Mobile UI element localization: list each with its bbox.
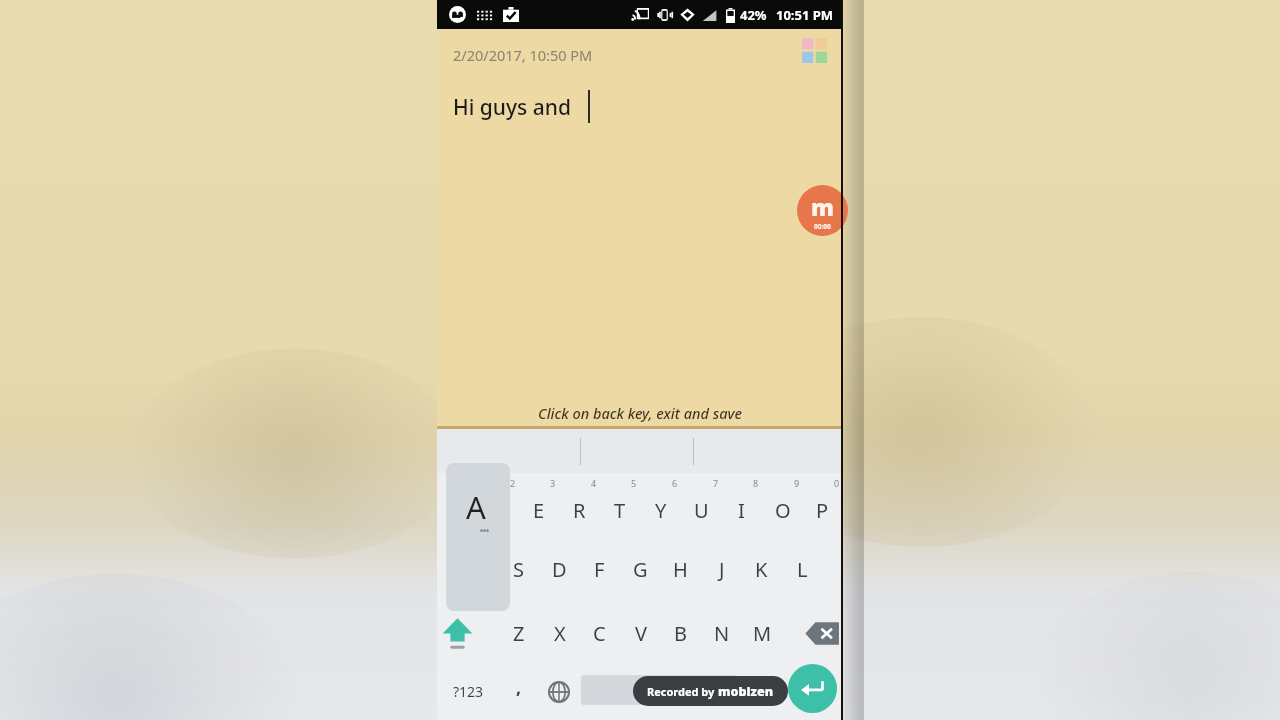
- staticText: A: [466, 486, 486, 528]
- staticText: I: [738, 497, 745, 524]
- staticText: ?123: [453, 682, 484, 701]
- button[interactable]: 7: [681, 473, 722, 537]
- button[interactable]: B: [660, 601, 701, 665]
- staticText: V: [635, 620, 647, 647]
- button[interactable]: 9: [762, 473, 803, 537]
- staticText: mobizen: [718, 683, 774, 700]
- button[interactable]: C: [579, 601, 620, 665]
- staticText: 5: [631, 477, 637, 489]
- button[interactable]: J: [701, 537, 742, 601]
- staticText: 00:00: [814, 222, 831, 231]
- staticText: L: [797, 556, 808, 583]
- staticText: 7: [713, 477, 719, 489]
- button[interactable]: D: [539, 537, 580, 601]
- button[interactable]: K: [741, 537, 782, 601]
- staticText: F: [594, 556, 605, 583]
- button[interactable]: V: [620, 601, 661, 665]
- button[interactable]: L: [782, 537, 823, 601]
- button[interactable]: ?123: [437, 665, 499, 718]
- staticText: J: [719, 556, 725, 583]
- button[interactable]: F: [579, 537, 620, 601]
- staticText: X: [554, 620, 566, 647]
- button[interactable]: Mobizen recorder: [797, 185, 848, 236]
- staticText: 4: [591, 477, 597, 489]
- staticText: 2: [510, 477, 516, 489]
- staticText: C: [593, 620, 606, 647]
- button[interactable]: 2: [478, 473, 519, 537]
- staticText: Z: [513, 620, 525, 647]
- button[interactable]: Z: [498, 601, 539, 665]
- button[interactable]: Space: [581, 675, 737, 705]
- button[interactable]: Shift: [437, 601, 478, 665]
- button[interactable]: N: [701, 601, 742, 665]
- staticText: Hi guys and: [453, 93, 571, 122]
- button[interactable]: Enter: [788, 664, 837, 713]
- staticText: 42%: [740, 6, 767, 24]
- staticText: S: [513, 556, 524, 583]
- staticText: M: [753, 620, 772, 647]
- button[interactable]: Note colour: [797, 33, 831, 67]
- staticText: T: [614, 497, 626, 524]
- staticText: K: [755, 556, 768, 583]
- staticText: O: [775, 497, 791, 524]
- staticText: •••: [480, 525, 490, 536]
- staticText: 8: [753, 477, 759, 489]
- staticText: Click on back key, exit and save: [538, 403, 742, 423]
- staticText: B: [674, 620, 687, 647]
- button[interactable]: H: [660, 537, 701, 601]
- staticText: H: [673, 556, 688, 583]
- staticText: 3: [550, 477, 556, 489]
- button[interactable]: Backspace: [802, 601, 843, 665]
- button[interactable]: 1: [437, 473, 478, 537]
- staticText: 0: [834, 477, 840, 489]
- button[interactable]: M: [742, 601, 783, 665]
- button[interactable]: G: [620, 537, 661, 601]
- staticText: R: [573, 497, 586, 524]
- button[interactable]: Change language: [539, 665, 579, 718]
- staticText: m: [811, 191, 834, 222]
- button[interactable]: 8: [721, 473, 762, 537]
- staticText: E: [533, 497, 545, 524]
- button[interactable]: 6: [640, 473, 681, 537]
- button[interactable]: 0: [802, 473, 843, 537]
- staticText: 2/20/2017, 10:50 PM: [453, 45, 593, 65]
- staticText: G: [633, 556, 648, 583]
- staticText: Y: [655, 497, 667, 524]
- staticText: 6: [672, 477, 678, 489]
- button[interactable]: X: [539, 601, 580, 665]
- staticText: D: [552, 556, 567, 583]
- button[interactable]: S: [498, 537, 539, 601]
- staticText: 9: [794, 477, 800, 489]
- staticText: U: [694, 497, 709, 524]
- staticText: Recorded by: [647, 684, 718, 699]
- staticText: P: [816, 497, 829, 524]
- button[interactable]: 5: [599, 473, 640, 537]
- staticText: 10:51 PM: [776, 6, 834, 24]
- button[interactable]: 4: [559, 473, 600, 537]
- staticText: N: [714, 620, 730, 647]
- staticText: ,: [516, 675, 522, 700]
- button[interactable]: 3: [518, 473, 559, 537]
- button[interactable]: ,: [499, 665, 539, 718]
